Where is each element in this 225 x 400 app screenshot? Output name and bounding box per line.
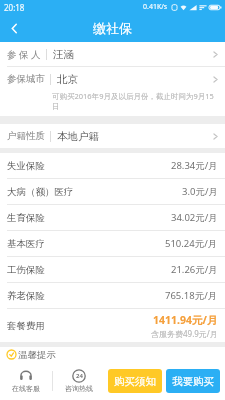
- staticText: 24: [76, 372, 83, 380]
- staticText: 工伤保险: [7, 264, 45, 276]
- staticText: 生育保险: [7, 212, 45, 224]
- staticText: 0.41K/s: [143, 2, 168, 12]
- button[interactable]: 养老保险: [0, 283, 225, 308]
- staticText: 大病（额）医疗: [7, 186, 74, 198]
- staticText: 北京: [57, 73, 212, 86]
- staticText: 1411.94元/月: [153, 313, 218, 327]
- staticText: 我要购买: [172, 375, 214, 388]
- button[interactable]: 工伤保险: [0, 257, 225, 282]
- staticText: 在线客服: [12, 384, 40, 393]
- button[interactable]: 套餐费用: [0, 309, 225, 342]
- staticText: 参保城市: [7, 73, 45, 85]
- button[interactable]: 生育保险: [0, 205, 225, 230]
- button[interactable]: 返回: [0, 14, 28, 42]
- staticText: 汪涵: [53, 48, 212, 61]
- staticText: 养老保险: [7, 290, 45, 302]
- staticText: 温馨提示: [18, 349, 56, 361]
- button[interactable]: 基本医疗: [0, 231, 225, 256]
- button[interactable]: 失业保险: [0, 153, 225, 178]
- staticText: 含服务费49.9元/月: [151, 328, 218, 339]
- staticText: 套餐费用: [7, 320, 45, 332]
- staticText: 失业保险: [7, 160, 45, 172]
- staticText: 20:18: [4, 2, 25, 13]
- staticText: 28.34元/月: [171, 159, 218, 172]
- staticText: 购买须知: [114, 375, 156, 388]
- button[interactable]: 购买须知: [108, 369, 162, 393]
- staticText: 咨询热线: [65, 384, 93, 393]
- staticText: 3.0元/月: [182, 185, 218, 198]
- staticText: 21.26元/月: [171, 263, 218, 276]
- staticText: 户籍性质: [7, 130, 45, 142]
- staticText: 765.18元/月: [165, 289, 218, 302]
- staticText: 510.24元/月: [165, 237, 218, 250]
- button[interactable]: 大病（额）医疗: [0, 179, 225, 204]
- button[interactable]: 户籍性质: [0, 124, 225, 148]
- staticText: 本地户籍: [57, 130, 212, 143]
- button[interactable]: 24: [53, 362, 105, 400]
- button[interactable]: 我要购买: [166, 369, 220, 393]
- staticText: 34.02元/月: [171, 211, 218, 224]
- button[interactable]: 参保城市: [0, 67, 225, 116]
- staticText: 基本医疗: [7, 238, 45, 250]
- button[interactable]: 在线客服: [0, 362, 52, 400]
- staticText: 参 保 人: [7, 48, 41, 61]
- staticText: 可购买2016年9月及以后月份，截止时间为9月15日: [52, 91, 215, 112]
- button[interactable]: 参 保 人: [0, 42, 225, 66]
- staticText: 缴社保: [93, 20, 132, 36]
